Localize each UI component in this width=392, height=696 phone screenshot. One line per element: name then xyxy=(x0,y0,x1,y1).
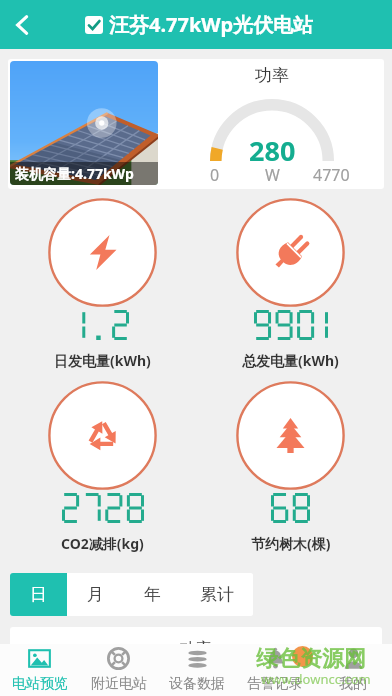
staticText: 汪芬4.77kWp光伏电站 xyxy=(109,11,314,38)
button[interactable]: 日 xyxy=(10,573,67,616)
staticText: W xyxy=(265,164,280,186)
button[interactable]: 电站预览 xyxy=(0,644,79,696)
staticText: 装机容量:4.77kWp xyxy=(15,164,134,183)
staticText: www.downcc.com xyxy=(261,670,371,688)
button[interactable]: 告警记录 xyxy=(236,644,314,696)
staticText: 告警记录 xyxy=(247,675,303,693)
staticText: 日 xyxy=(30,584,47,605)
button[interactable]: 年 xyxy=(124,573,181,616)
staticText: 累计 xyxy=(200,584,234,605)
staticText: 总发电量(kWh) xyxy=(242,351,339,370)
staticText: 功率 xyxy=(255,65,289,86)
staticText: 节约树木(棵) xyxy=(251,534,331,553)
staticText: 年 xyxy=(144,584,161,605)
button[interactable]: 累计 xyxy=(181,573,253,616)
staticText: 绿色资源网 xyxy=(256,645,366,673)
button[interactable]: 设备数据 xyxy=(158,644,236,696)
staticText: 我的 xyxy=(339,675,367,693)
staticText: 日发电量(kWh) xyxy=(54,351,151,370)
staticText: CO2减排(kg) xyxy=(61,534,144,553)
staticText: 4770 xyxy=(313,164,350,186)
staticText: 功率 xyxy=(180,639,212,644)
staticText: 设备数据 xyxy=(169,675,225,693)
button[interactable]: CO2减排(kg) xyxy=(48,381,157,553)
button[interactable]: Back xyxy=(2,5,42,45)
button[interactable]: 月 xyxy=(67,573,124,616)
button[interactable]: 附近电站 xyxy=(79,644,158,696)
staticText: 月 xyxy=(87,584,104,605)
button[interactable]: 节约树木(棵) xyxy=(236,381,345,553)
button[interactable]: 总发电量(kWh) xyxy=(236,198,345,370)
staticText: 0 xyxy=(210,164,220,186)
button[interactable]: 日发电量(kWh) xyxy=(48,198,157,370)
staticText: 电站预览 xyxy=(12,675,68,693)
staticText: 附近电站 xyxy=(91,675,147,693)
staticText: 280 xyxy=(249,132,296,169)
button[interactable]: 我的 xyxy=(314,644,392,696)
